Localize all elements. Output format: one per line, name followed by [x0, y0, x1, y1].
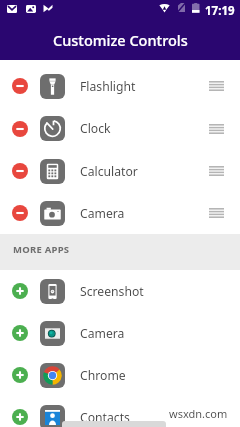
staticText: Chrome [80, 367, 126, 384]
other: Remove Calculator [12, 163, 28, 179]
staticText: Camera [80, 205, 125, 222]
button[interactable]: Add Screenshot [0, 270, 240, 312]
staticText: 17:19 [205, 3, 235, 19]
button[interactable]: Add Contacts [0, 396, 240, 427]
button[interactable]: Remove Flashlight [0, 65, 240, 107]
button[interactable]: Remove Calculator [0, 150, 240, 192]
button[interactable]: MORE APPS [0, 234, 240, 270]
other: Remove Flashlight [12, 78, 28, 94]
other: Reorder Flashlight [192, 65, 240, 107]
other: Add Screenshot [12, 283, 28, 299]
other: Remove Camera [12, 205, 28, 221]
staticText: wsxdn.com [169, 406, 228, 421]
button[interactable]: Remove Camera [0, 192, 240, 234]
button[interactable]: Remove Clock [0, 107, 240, 150]
other: Add Chrome [12, 367, 28, 383]
other: Reorder Clock [192, 107, 240, 150]
staticText: MORE APPS [13, 243, 70, 256]
staticText: Customize Controls [53, 30, 188, 50]
other: Add Contacts [12, 409, 28, 425]
button[interactable]: Add Camera [0, 312, 240, 354]
staticText: Clock [80, 120, 111, 137]
button[interactable]: Add Chrome [0, 354, 240, 396]
other: Remove Clock [12, 121, 28, 137]
other: Add Camera [12, 325, 28, 341]
staticText: Flashlight [80, 78, 136, 95]
other: Reorder Camera [192, 192, 240, 234]
staticText: Camera [80, 325, 125, 342]
other: Reorder Calculator [192, 150, 240, 192]
staticText: Screenshot [80, 283, 144, 300]
staticText: Calculator [80, 163, 138, 180]
staticText: Contacts [80, 409, 130, 426]
